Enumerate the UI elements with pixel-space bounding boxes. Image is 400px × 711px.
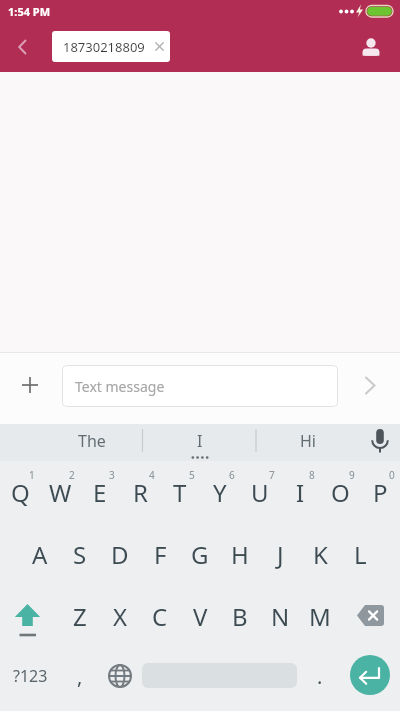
button[interactable]: M (300, 585, 340, 647)
staticText: , (77, 663, 83, 690)
button[interactable]: L (340, 523, 380, 585)
button[interactable]: , (60, 647, 100, 705)
staticText: 9 (349, 468, 355, 482)
staticText: S (73, 538, 87, 571)
button[interactable]: I (145, 426, 255, 456)
staticText: 3 (109, 468, 115, 482)
staticText: 5 (189, 468, 195, 482)
button[interactable] (100, 647, 140, 705)
button[interactable]: I (280, 461, 320, 523)
button[interactable]: U (240, 461, 280, 523)
staticText: Y (213, 476, 227, 509)
button[interactable]: Text message (62, 365, 338, 407)
button[interactable]: J (260, 523, 300, 585)
button[interactable]: V (180, 585, 220, 647)
button[interactable] (6, 33, 36, 61)
button[interactable]: The (42, 426, 142, 456)
button[interactable]: Q (0, 461, 40, 523)
staticText: T (173, 476, 187, 509)
button[interactable]: K (300, 523, 340, 585)
button[interactable]: Y (200, 461, 240, 523)
button[interactable] (362, 424, 399, 461)
button[interactable] (12, 367, 48, 403)
button[interactable]: O (320, 461, 360, 523)
button[interactable]: W (40, 461, 80, 523)
button[interactable]: G (180, 523, 220, 585)
staticText: K (313, 538, 328, 571)
staticText: M (309, 600, 331, 633)
staticText: ?123 (13, 665, 48, 687)
staticText: 4 (149, 468, 155, 482)
staticText: 8 (309, 468, 315, 482)
staticText: R (133, 476, 148, 509)
button[interactable]: . (300, 647, 340, 705)
staticText: N (271, 600, 290, 633)
button[interactable]: D (100, 523, 140, 585)
button[interactable]: H (220, 523, 260, 585)
staticText: P (373, 476, 388, 509)
staticText: 7 (269, 468, 275, 482)
staticText: A (32, 538, 48, 571)
staticText: Hi (300, 430, 316, 452)
staticText: F (154, 538, 167, 571)
staticText: I (296, 476, 305, 509)
staticText: J (277, 538, 284, 571)
staticText: W (49, 476, 72, 509)
staticText: O (331, 476, 350, 509)
staticText: D (111, 538, 129, 571)
staticText: 18730218809 (63, 38, 145, 56)
button[interactable]: P (360, 461, 400, 523)
button[interactable]: 18730218809 (52, 31, 170, 62)
staticText: V (193, 600, 208, 633)
button[interactable] (0, 585, 56, 647)
staticText: Z (73, 600, 87, 633)
staticText: 0 (389, 468, 395, 482)
staticText: H (231, 538, 249, 571)
button[interactable]: Z (60, 585, 100, 647)
button[interactable]: N (260, 585, 300, 647)
button[interactable]: S (60, 523, 100, 585)
button[interactable]: R (120, 461, 160, 523)
button[interactable] (344, 585, 400, 647)
staticText: L (354, 538, 367, 571)
staticText: B (232, 600, 248, 633)
staticText: X (113, 600, 128, 633)
button[interactable]: ?123 (4, 647, 56, 705)
staticText: 6 (229, 468, 235, 482)
button[interactable]: C (140, 585, 180, 647)
button[interactable] (356, 30, 388, 62)
button[interactable] (350, 655, 390, 695)
staticText: G (191, 538, 209, 571)
staticText: The (78, 430, 106, 452)
button[interactable] (352, 367, 388, 403)
staticText: Text message (75, 377, 165, 396)
staticText: U (251, 476, 269, 509)
staticText: . (317, 663, 323, 690)
staticText: I (197, 430, 203, 452)
button[interactable]: Hi (258, 426, 358, 456)
staticText: 1:54 PM (8, 4, 51, 19)
staticText: Q (11, 476, 30, 509)
button[interactable]: E (80, 461, 120, 523)
button[interactable]: X (100, 585, 140, 647)
staticText: E (93, 476, 107, 509)
staticText: 2 (69, 468, 75, 482)
staticText: C (152, 600, 168, 633)
button[interactable]: F (140, 523, 180, 585)
button[interactable]: B (220, 585, 260, 647)
staticText: 1 (29, 468, 35, 482)
button[interactable]: T (160, 461, 200, 523)
button[interactable]: A (20, 523, 60, 585)
